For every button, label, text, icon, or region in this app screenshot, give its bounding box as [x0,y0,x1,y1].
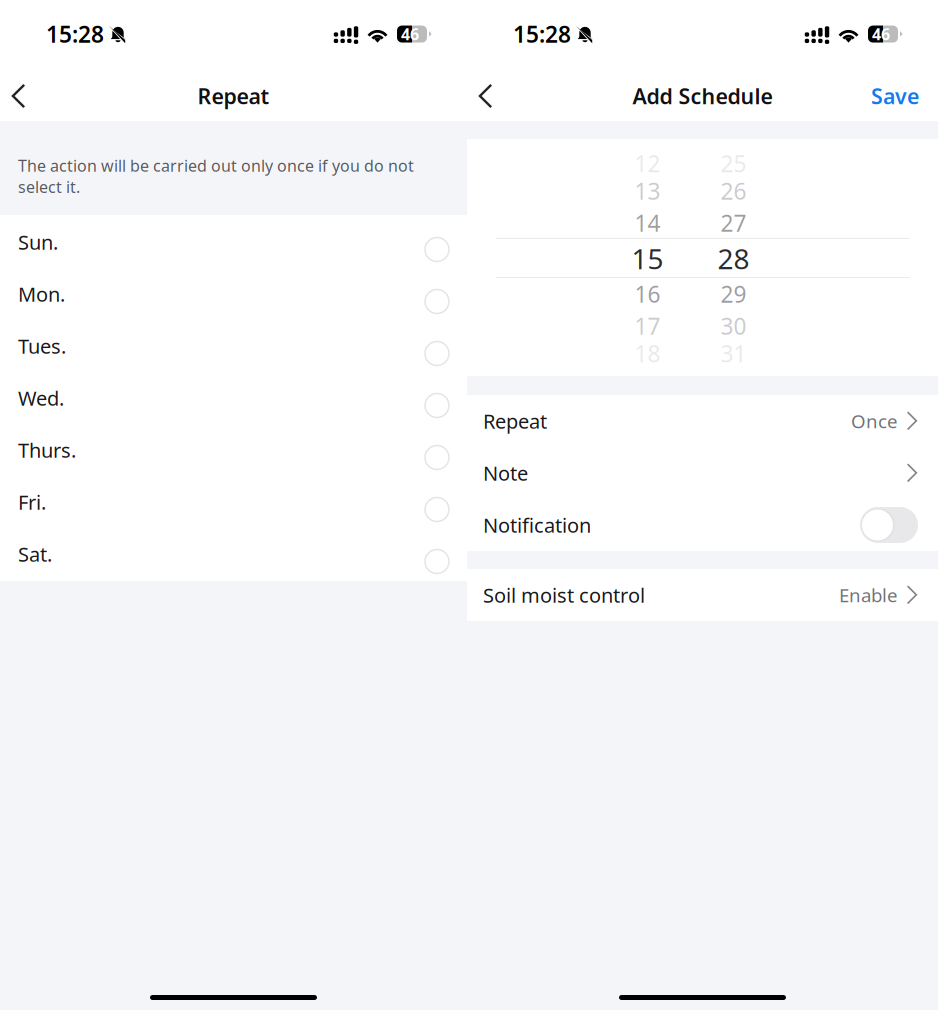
staticText: 31 [720,338,746,368]
staticText: 25 [720,148,746,178]
staticText: Save [871,82,919,110]
button[interactable]: Mon. [0,268,467,320]
staticText: Fri. [18,489,46,515]
staticText: Enable [839,583,898,607]
button[interactable]: Sun. [0,216,467,268]
staticText: Sat. [18,541,52,567]
button[interactable]: Sat. [0,528,467,580]
staticText: Once [851,409,898,433]
staticText: 15:28 [46,19,104,49]
button[interactable]: Notification [467,499,938,551]
button[interactable]: Back [0,74,42,118]
staticText: Notification [483,512,591,538]
staticText: 13 [634,176,660,206]
staticText: 26 [720,176,746,206]
staticText: 15 [631,240,663,277]
staticText: 46 [872,23,890,45]
staticText: 12 [634,148,660,178]
staticText: Thurs. [18,437,76,463]
button[interactable]: Save [857,74,938,118]
staticText: 18 [634,338,660,368]
button[interactable]: Wed. [0,372,467,424]
staticText: 30 [720,311,746,341]
button[interactable]: Repeat [467,395,938,447]
staticText: 27 [720,208,746,238]
staticText: Mon. [18,281,65,307]
button[interactable]: Back [467,74,509,118]
button[interactable]: Tues. [0,320,467,372]
staticText: Note [483,460,528,486]
staticText: 14 [634,208,660,238]
staticText: 16 [634,279,660,309]
staticText: Wed. [18,385,64,411]
staticText: Repeat [483,408,547,434]
button[interactable]: Soil moist control [467,569,938,621]
button[interactable]: Note [467,447,938,499]
staticText: 17 [634,311,660,341]
staticText: 46 [401,23,419,45]
staticText: Sun. [18,229,58,255]
staticText: 29 [720,279,746,309]
staticText: 15:28 [513,19,571,49]
staticText: Soil moist control [483,582,645,608]
staticText: Add Schedule [632,82,772,110]
button[interactable]: Thurs. [0,424,467,476]
button[interactable]: Fri. [0,476,467,528]
staticText: Repeat [197,82,269,110]
staticText: 28 [717,240,749,277]
staticText: The action will be carried out only once… [18,155,414,197]
staticText: Tues. [18,333,66,359]
